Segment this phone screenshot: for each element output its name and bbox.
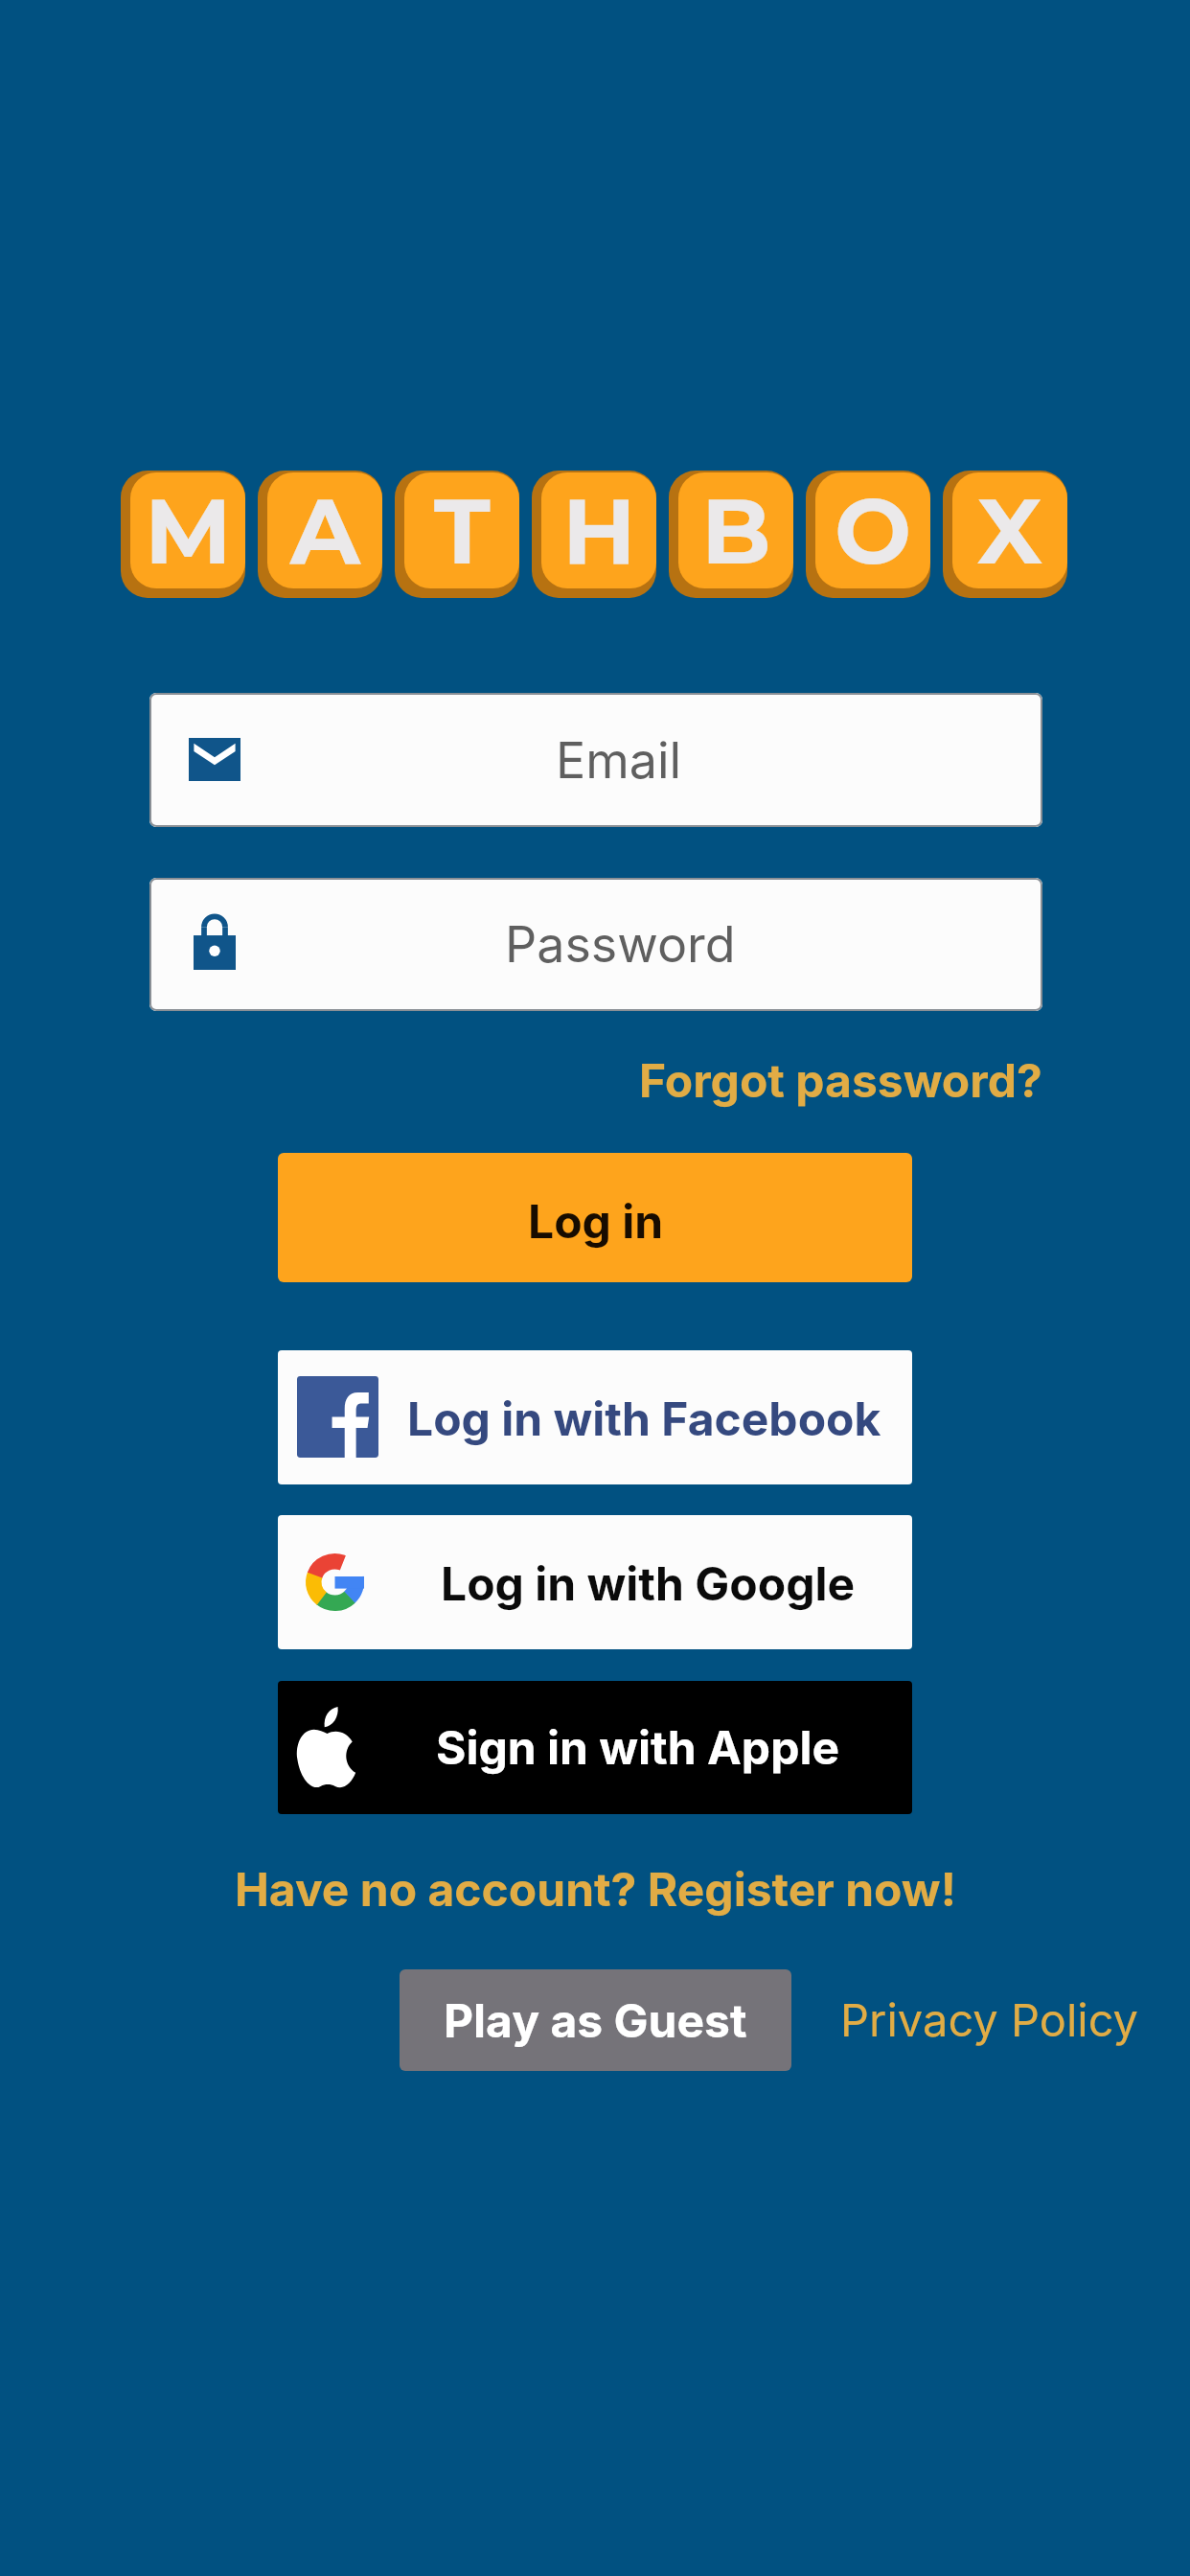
button[interactable]: Password [149, 878, 1042, 1011]
button[interactable]: Play as Guest [400, 1969, 791, 2071]
other: Password [194, 914, 236, 970]
staticText: Log in with Facebook [407, 1391, 881, 1446]
button[interactable]: Sign in with Apple [278, 1681, 912, 1814]
staticText: Sign in with Apple [436, 1719, 839, 1775]
staticText: Privacy Policy [840, 1992, 1137, 2047]
staticText: Forgot password? [639, 1052, 1042, 1108]
button[interactable]: Privacy Policy [840, 1992, 1137, 2047]
button[interactable]: Log in with Facebook [278, 1350, 912, 1484]
button[interactable]: Forgot password? [594, 1052, 1042, 1108]
staticText: H [562, 475, 636, 586]
staticText: M [145, 475, 232, 586]
staticText: A [290, 475, 360, 586]
staticText: B [701, 475, 771, 586]
staticText: X [977, 475, 1042, 586]
staticText: Password [505, 914, 736, 975]
staticText: Email [556, 730, 682, 791]
staticText: T [434, 475, 491, 586]
staticText: Log in [528, 1193, 664, 1249]
button[interactable]: Log in [278, 1153, 912, 1282]
staticText: O [835, 475, 912, 586]
button[interactable]: Email [149, 693, 1042, 827]
button[interactable]: Have no account? Register now! [235, 1861, 955, 1917]
staticText: Play as Guest [444, 1992, 747, 2048]
staticText: Have no account? Register now! [235, 1861, 955, 1917]
other: Email [189, 738, 240, 781]
staticText: Log in with Google [441, 1555, 856, 1611]
button[interactable]: Log in with Google [278, 1515, 912, 1649]
